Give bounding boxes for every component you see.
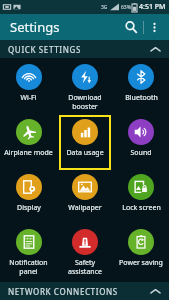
button[interactable]: Display	[2, 170, 55, 225]
staticText: Wallpaper	[68, 203, 102, 213]
staticText: NETWORK CONNECTIONS	[8, 286, 118, 297]
button[interactable]: Wi-Fi	[2, 60, 55, 115]
button[interactable]: Safety assistance	[59, 225, 111, 280]
staticText: Safety assistance	[68, 258, 102, 276]
button[interactable]: NETWORK CONNECTIONS	[0, 282, 169, 300]
button[interactable]: Data usage	[59, 115, 111, 170]
staticText: QUICK SETTINGS	[8, 44, 81, 55]
staticText: Notification panel	[9, 258, 48, 276]
staticText: Lock screen	[122, 203, 161, 213]
staticText: Download booster	[68, 93, 102, 111]
staticText: Sound	[130, 148, 152, 158]
staticText: Power saving	[119, 258, 163, 268]
button[interactable]: QUICK SETTINGS	[0, 40, 169, 58]
button[interactable]: Bluetooth	[115, 60, 167, 115]
button[interactable]: Power saving	[115, 225, 167, 280]
button[interactable]: Lock screen	[115, 170, 167, 225]
button[interactable]: Wallpaper	[59, 170, 111, 225]
button[interactable]: Sound	[115, 115, 167, 170]
button[interactable]: Download booster	[59, 60, 111, 115]
button[interactable]: Search	[119, 15, 143, 39]
staticText: Wi-Fi	[20, 93, 37, 103]
staticText: Settings	[10, 18, 60, 36]
staticText: 4:51 PM	[139, 2, 166, 12]
button[interactable]: More options	[144, 17, 164, 37]
button[interactable]: Airplane mode	[2, 115, 55, 170]
staticText: Airplane mode	[4, 148, 53, 158]
staticText: 3G	[101, 4, 108, 11]
button[interactable]: Notification panel	[2, 225, 55, 280]
staticText: Data usage	[66, 148, 104, 158]
staticText: Display	[17, 203, 41, 213]
staticText: 63%	[121, 4, 131, 11]
staticText: Bluetooth	[125, 93, 158, 103]
